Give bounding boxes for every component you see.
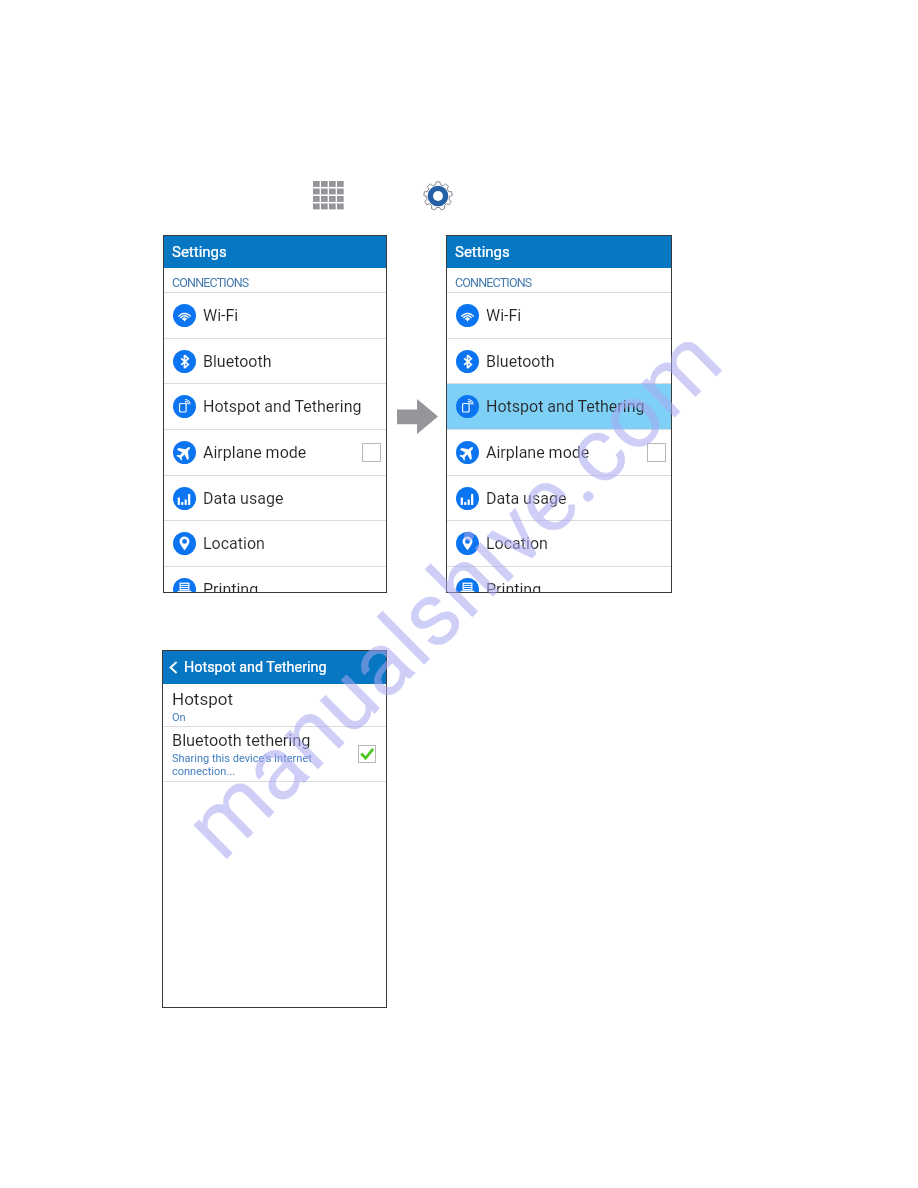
- staticText: Hotspot and Tethering: [486, 397, 645, 416]
- button[interactable]: Hotspot and Tethering: [163, 384, 387, 429]
- staticText: manualshive.com: [164, 307, 742, 879]
- staticText: Sharing this device's Internet: [172, 752, 312, 765]
- other: Back: [165, 659, 182, 676]
- staticText: Location: [486, 534, 548, 553]
- staticText: Hotspot and Tethering: [203, 397, 362, 416]
- button[interactable]: Airplane mode toggle: [647, 443, 666, 462]
- staticText: Bluetooth: [486, 352, 555, 371]
- button[interactable]: Bluetooth: [446, 339, 672, 384]
- button[interactable]: Hotspot and Tethering: [446, 384, 672, 429]
- button[interactable]: Bluetooth: [163, 339, 387, 384]
- button[interactable]: Wi-Fi: [446, 293, 672, 338]
- button[interactable]: Settings: [423, 181, 453, 211]
- button[interactable]: Settings: [163, 235, 387, 268]
- staticText: Settings: [172, 243, 227, 261]
- staticText: Airplane mode: [203, 443, 307, 462]
- button[interactable]: Wi-Fi: [163, 293, 387, 338]
- button[interactable]: Apps: [313, 181, 345, 211]
- staticText: Wi-Fi: [486, 306, 522, 325]
- staticText: Data usage: [486, 489, 567, 508]
- button[interactable]: Location: [446, 521, 672, 566]
- staticText: Settings: [455, 243, 510, 261]
- button[interactable]: Location: [163, 521, 387, 566]
- button[interactable]: Hotspot: [162, 684, 387, 726]
- staticText: Hotspot and Tethering: [184, 659, 327, 676]
- button[interactable]: Back: [162, 650, 387, 684]
- staticText: connection...: [172, 765, 236, 778]
- button[interactable]: Settings: [446, 235, 672, 268]
- button[interactable]: Data usage: [163, 476, 387, 521]
- staticText: Bluetooth: [203, 352, 272, 371]
- staticText: CONNECTIONS: [172, 275, 249, 290]
- button[interactable]: Airplane mode: [163, 430, 387, 475]
- button[interactable]: Bluetooth tethering: [162, 727, 387, 781]
- staticText: On: [172, 711, 186, 724]
- staticText: Data usage: [203, 489, 284, 508]
- button[interactable]: Printing: [163, 567, 387, 593]
- staticText: Location: [203, 534, 265, 553]
- button[interactable]: Printing: [446, 567, 672, 593]
- staticText: Airplane mode: [486, 443, 590, 462]
- button[interactable]: Data usage: [446, 476, 672, 521]
- staticText: Wi-Fi: [203, 306, 239, 325]
- staticText: Hotspot: [172, 689, 233, 709]
- button[interactable]: Airplane mode toggle: [362, 443, 381, 462]
- staticText: CONNECTIONS: [455, 275, 532, 290]
- button[interactable]: Airplane mode: [446, 430, 672, 475]
- staticText: Printing: [486, 580, 542, 593]
- button[interactable]: Bluetooth tethering checkbox: [358, 745, 376, 763]
- staticText: Bluetooth tethering: [172, 731, 311, 750]
- staticText: Printing: [203, 580, 259, 593]
